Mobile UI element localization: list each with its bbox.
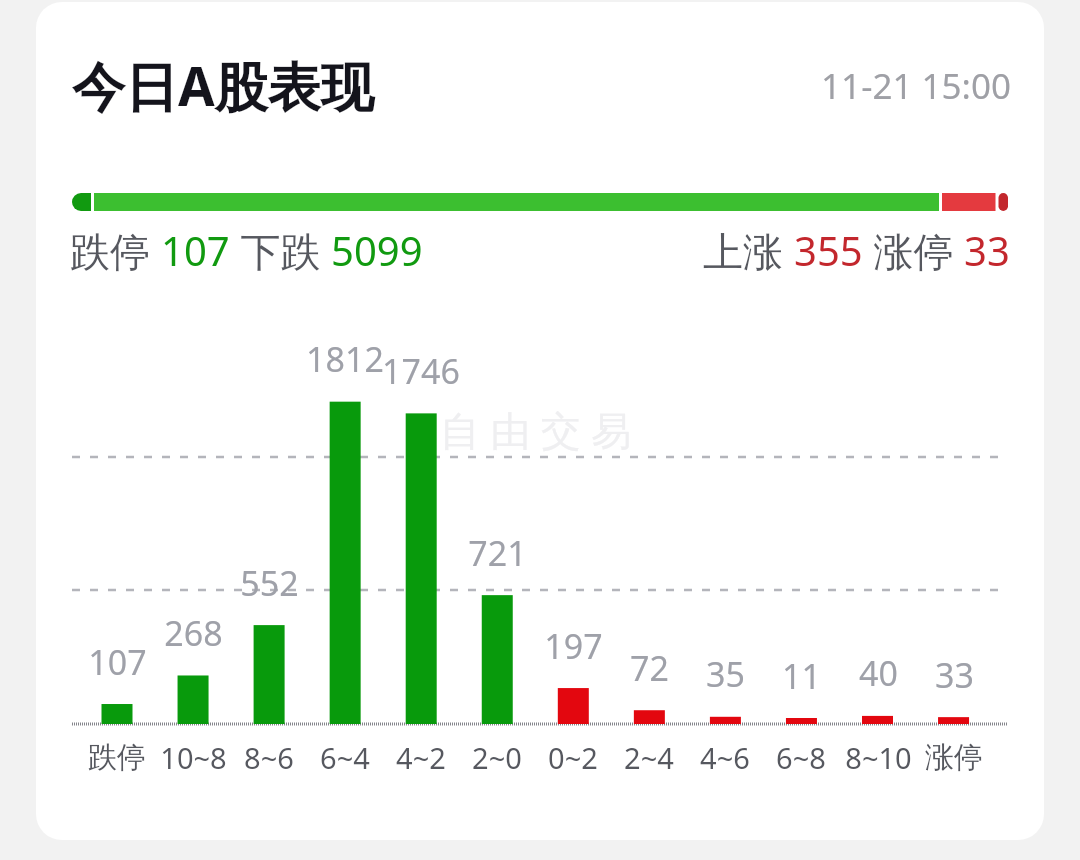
staticText: 2~0 bbox=[472, 738, 522, 777]
staticText: 11-21 15:00 bbox=[821, 62, 1011, 110]
staticText: 涨停 bbox=[925, 739, 983, 776]
staticText: 107 bbox=[88, 639, 147, 685]
button[interactable]: 6~8 bbox=[763, 737, 839, 777]
button[interactable]: 自 由 交 易 bbox=[36, 2, 1044, 840]
staticText: 跌停 bbox=[88, 739, 146, 776]
staticText: 下跌 bbox=[230, 223, 331, 275]
button[interactable]: 2~0 bbox=[459, 737, 535, 777]
staticText: 355 bbox=[794, 223, 863, 275]
staticText: 4~2 bbox=[396, 738, 446, 777]
staticText: 6~8 bbox=[776, 738, 826, 777]
staticText: 40 bbox=[859, 650, 898, 696]
button[interactable]: 8~10 bbox=[840, 737, 916, 777]
staticText: 8~6 bbox=[244, 738, 294, 777]
button[interactable]: 涨跌比例 bbox=[72, 193, 1008, 211]
staticText: 上涨 bbox=[703, 223, 794, 275]
staticText: 自 由 交 易 bbox=[440, 402, 632, 457]
button[interactable]: 跌停 bbox=[79, 737, 155, 777]
staticText: 4~6 bbox=[700, 738, 750, 777]
staticText: 跌停 bbox=[70, 223, 161, 275]
staticText: 552 bbox=[240, 560, 299, 606]
staticText: 2~4 bbox=[624, 738, 674, 777]
button[interactable]: 2~4 bbox=[611, 737, 687, 777]
staticText: 33 bbox=[964, 223, 1010, 275]
button[interactable]: 4~6 bbox=[687, 737, 763, 777]
staticText: 72 bbox=[630, 645, 669, 691]
staticText: 35 bbox=[706, 651, 745, 697]
button[interactable]: 跌停 bbox=[70, 223, 1010, 275]
button[interactable]: 涨停 bbox=[916, 737, 992, 777]
staticText: 5099 bbox=[331, 223, 423, 275]
button[interactable]: 6~4 bbox=[307, 737, 383, 777]
button[interactable]: 0~2 bbox=[535, 737, 611, 777]
staticText: 11 bbox=[782, 653, 821, 699]
staticText: 6~4 bbox=[320, 738, 370, 777]
staticText: 今日A股表现 bbox=[72, 49, 374, 121]
button[interactable]: 8~6 bbox=[231, 737, 307, 777]
staticText: 1812 bbox=[306, 336, 384, 382]
button[interactable]: 4~2 bbox=[383, 737, 459, 777]
staticText: 1746 bbox=[382, 348, 460, 394]
staticText: 721 bbox=[468, 530, 527, 576]
staticText: 33 bbox=[935, 652, 974, 698]
staticText: 涨停 bbox=[863, 223, 964, 275]
button[interactable]: 11-21 15:00 bbox=[606, 58, 1011, 114]
staticText: 197 bbox=[544, 623, 603, 669]
button[interactable]: 10~8 bbox=[155, 737, 231, 777]
staticText: 268 bbox=[164, 610, 223, 656]
staticText: 107 bbox=[161, 223, 230, 275]
staticText: 10~8 bbox=[160, 738, 227, 777]
staticText: 8~10 bbox=[845, 738, 912, 777]
staticText: 0~2 bbox=[548, 738, 598, 777]
